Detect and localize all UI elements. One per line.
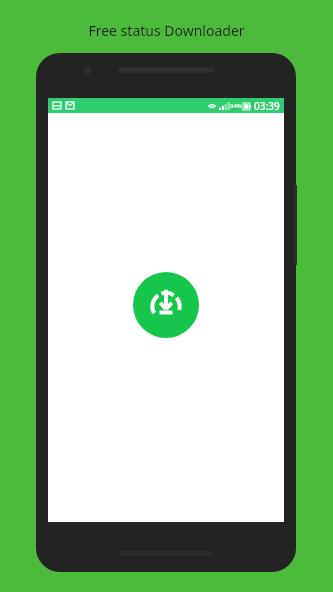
staticText: 03:39 <box>254 99 280 113</box>
staticText: 94% <box>230 102 242 110</box>
button[interactable]: Download status <box>133 272 199 338</box>
staticText: Free status Downloader <box>0 21 333 40</box>
